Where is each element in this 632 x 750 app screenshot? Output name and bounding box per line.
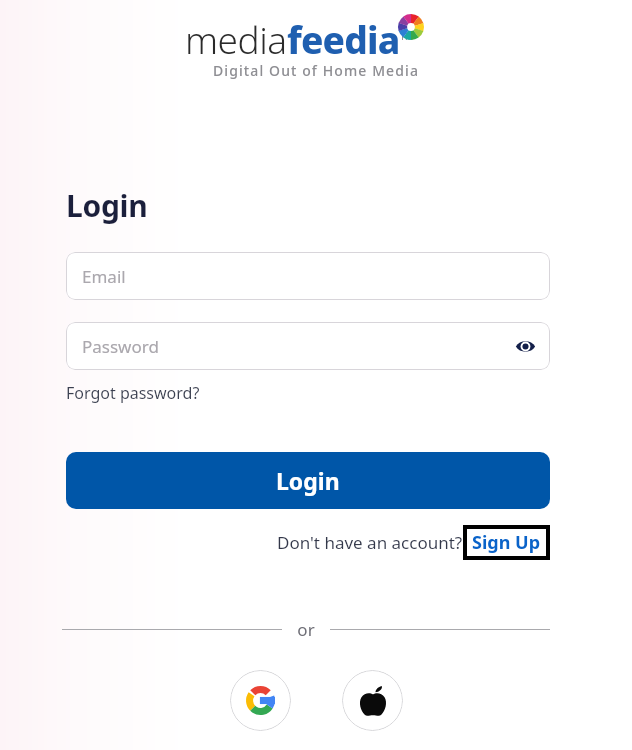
staticText: Email: [82, 265, 126, 288]
button[interactable]: Email: [66, 252, 550, 300]
button[interactable]: Sign in with Apple: [342, 670, 403, 731]
button[interactable]: Forgot password?: [66, 382, 200, 404]
button[interactable]: Show password: [508, 329, 542, 363]
button[interactable]: Login: [66, 452, 550, 509]
staticText: TM: [400, 30, 414, 42]
staticText: Forgot password?: [66, 382, 200, 404]
staticText: Don't have an account?: [277, 531, 463, 554]
staticText: Digital Out of Home Media: [213, 61, 420, 80]
button[interactable]: Sign in with Google: [230, 670, 291, 731]
staticText: Password: [82, 335, 159, 358]
staticText: Login: [276, 465, 340, 496]
button[interactable]: Sign Up: [463, 525, 550, 560]
staticText: Sign Up: [472, 530, 541, 555]
staticText: Login: [66, 185, 148, 226]
staticText: media: [185, 14, 287, 58]
staticText: feedia: [287, 14, 400, 58]
staticText: or: [297, 618, 315, 641]
button[interactable]: Password: [66, 322, 550, 370]
